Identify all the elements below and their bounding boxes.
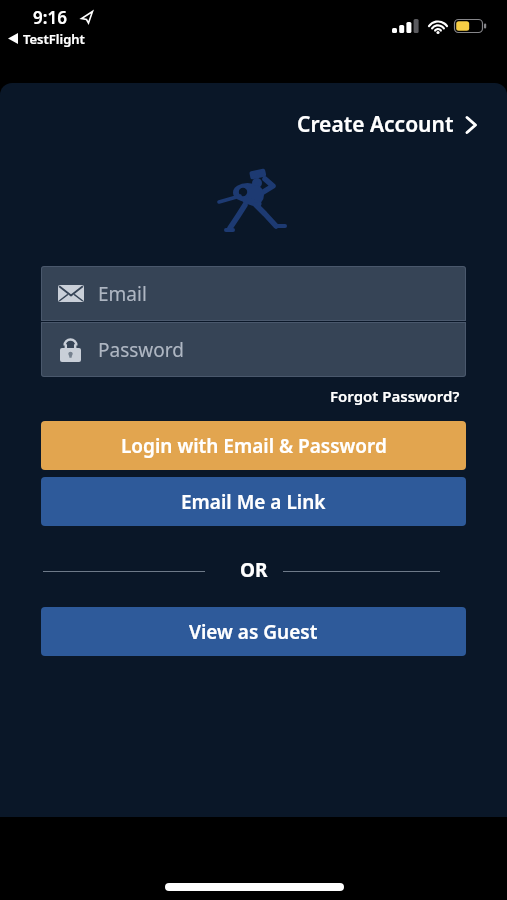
button[interactable]: Create Account — [297, 110, 477, 139]
staticText: View as Guest — [189, 619, 318, 645]
staticText: 9:16 — [33, 6, 67, 29]
staticText: TestFlight — [23, 30, 85, 48]
staticText: Forgot Password? — [330, 386, 460, 406]
button[interactable]: Forgot Password? — [330, 386, 460, 406]
staticText: Email Me a Link — [181, 489, 326, 515]
button[interactable]: View as Guest — [41, 607, 466, 656]
staticText: Create Account — [297, 110, 454, 139]
staticText: Email — [98, 281, 147, 307]
button[interactable]: Email — [41, 266, 466, 321]
button[interactable]: Email Me a Link — [41, 477, 466, 526]
staticText: OR — [240, 557, 268, 583]
staticText: Login with Email & Password — [121, 433, 387, 459]
staticText: Password — [98, 337, 184, 363]
button[interactable]: Login with Email & Password — [41, 421, 466, 470]
button[interactable]: Password — [41, 322, 466, 377]
